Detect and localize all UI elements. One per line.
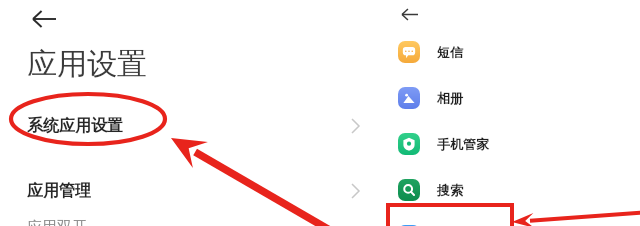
button[interactable]: 相册 xyxy=(383,77,640,119)
button[interactable]: 手机管家 xyxy=(383,123,640,165)
staticText: 手机管家 xyxy=(437,136,489,152)
staticText: 搜索 xyxy=(437,182,463,198)
button[interactable]: 应用管理 xyxy=(0,168,378,214)
staticText: 应用设置 xyxy=(27,45,147,83)
staticText: 相册 xyxy=(437,90,463,106)
button[interactable]: 系统应用设置 xyxy=(0,103,378,149)
button[interactable]: 设置 xyxy=(383,215,640,226)
staticText: 应用管理 xyxy=(27,181,91,201)
button[interactable]: Back xyxy=(22,2,66,36)
staticText: 系统应用设置 xyxy=(27,116,123,136)
staticText: 短信 xyxy=(437,44,463,60)
button[interactable]: Back xyxy=(391,0,427,28)
button[interactable]: 搜索 xyxy=(383,169,640,211)
staticText: 应用双开 xyxy=(27,218,87,226)
button[interactable]: 短信 xyxy=(383,31,640,73)
